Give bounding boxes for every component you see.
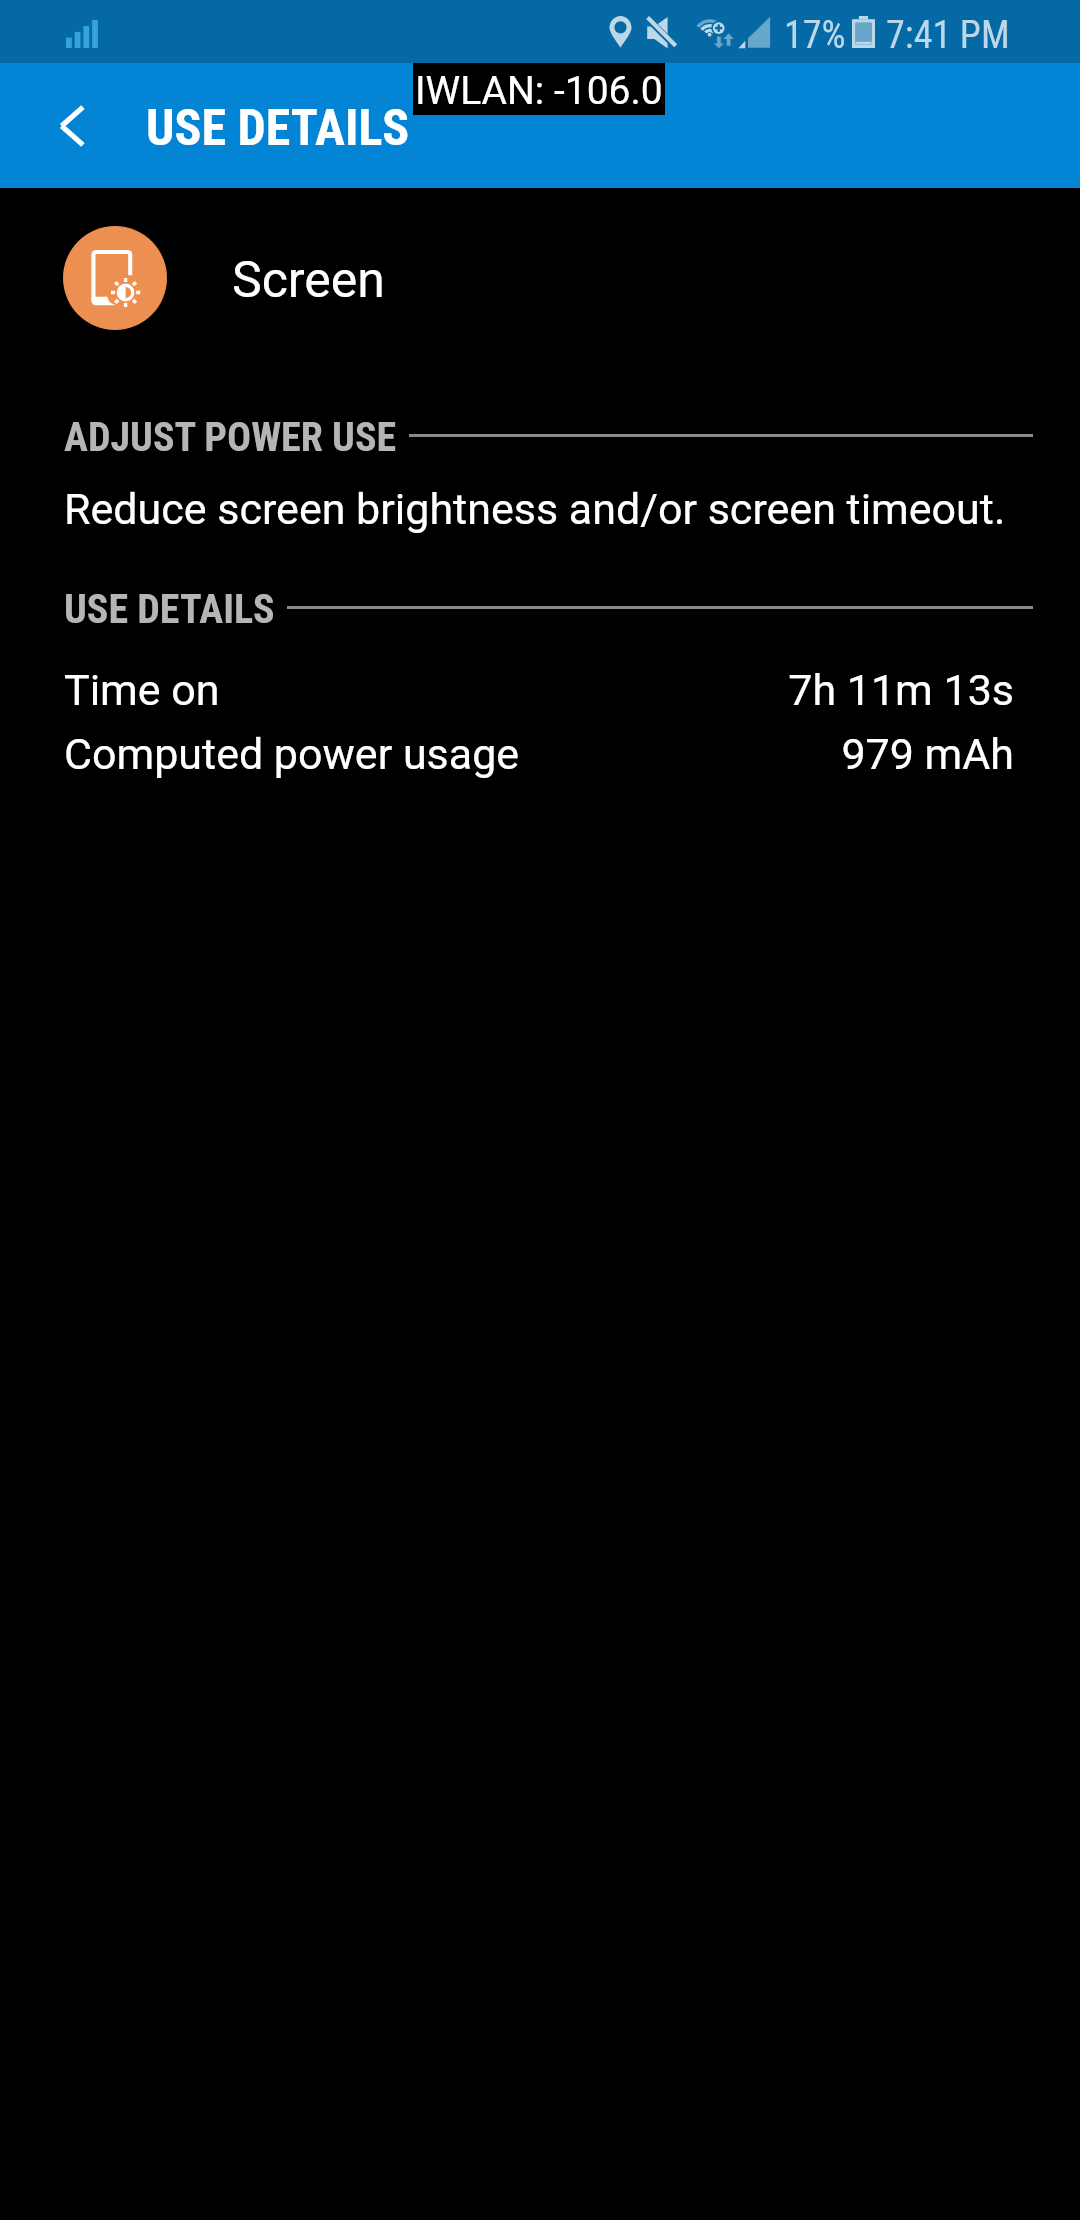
staticText: USE DETAILS [146,99,410,158]
button[interactable]: Screen [0,203,1080,353]
staticText: USE DETAILS [64,586,275,633]
staticText: 979 mAh [841,729,1014,779]
staticText: 7h 11m 13s [788,665,1014,715]
staticText: Screen [232,251,385,310]
staticText: Time on [64,665,220,715]
staticText: 7:41 PM [886,13,1010,58]
staticText: ADJUST POWER USE [64,414,397,461]
button[interactable]: Computed power usage [0,726,1080,782]
button[interactable]: Time on [0,662,1080,718]
staticText: Computed power usage [64,729,520,779]
staticText: 17% [784,13,846,58]
staticText: Reduce screen brightness and/or screen t… [64,484,1006,534]
staticText: IWLAN: -106.0 [415,68,663,114]
button[interactable]: Back [33,87,111,165]
